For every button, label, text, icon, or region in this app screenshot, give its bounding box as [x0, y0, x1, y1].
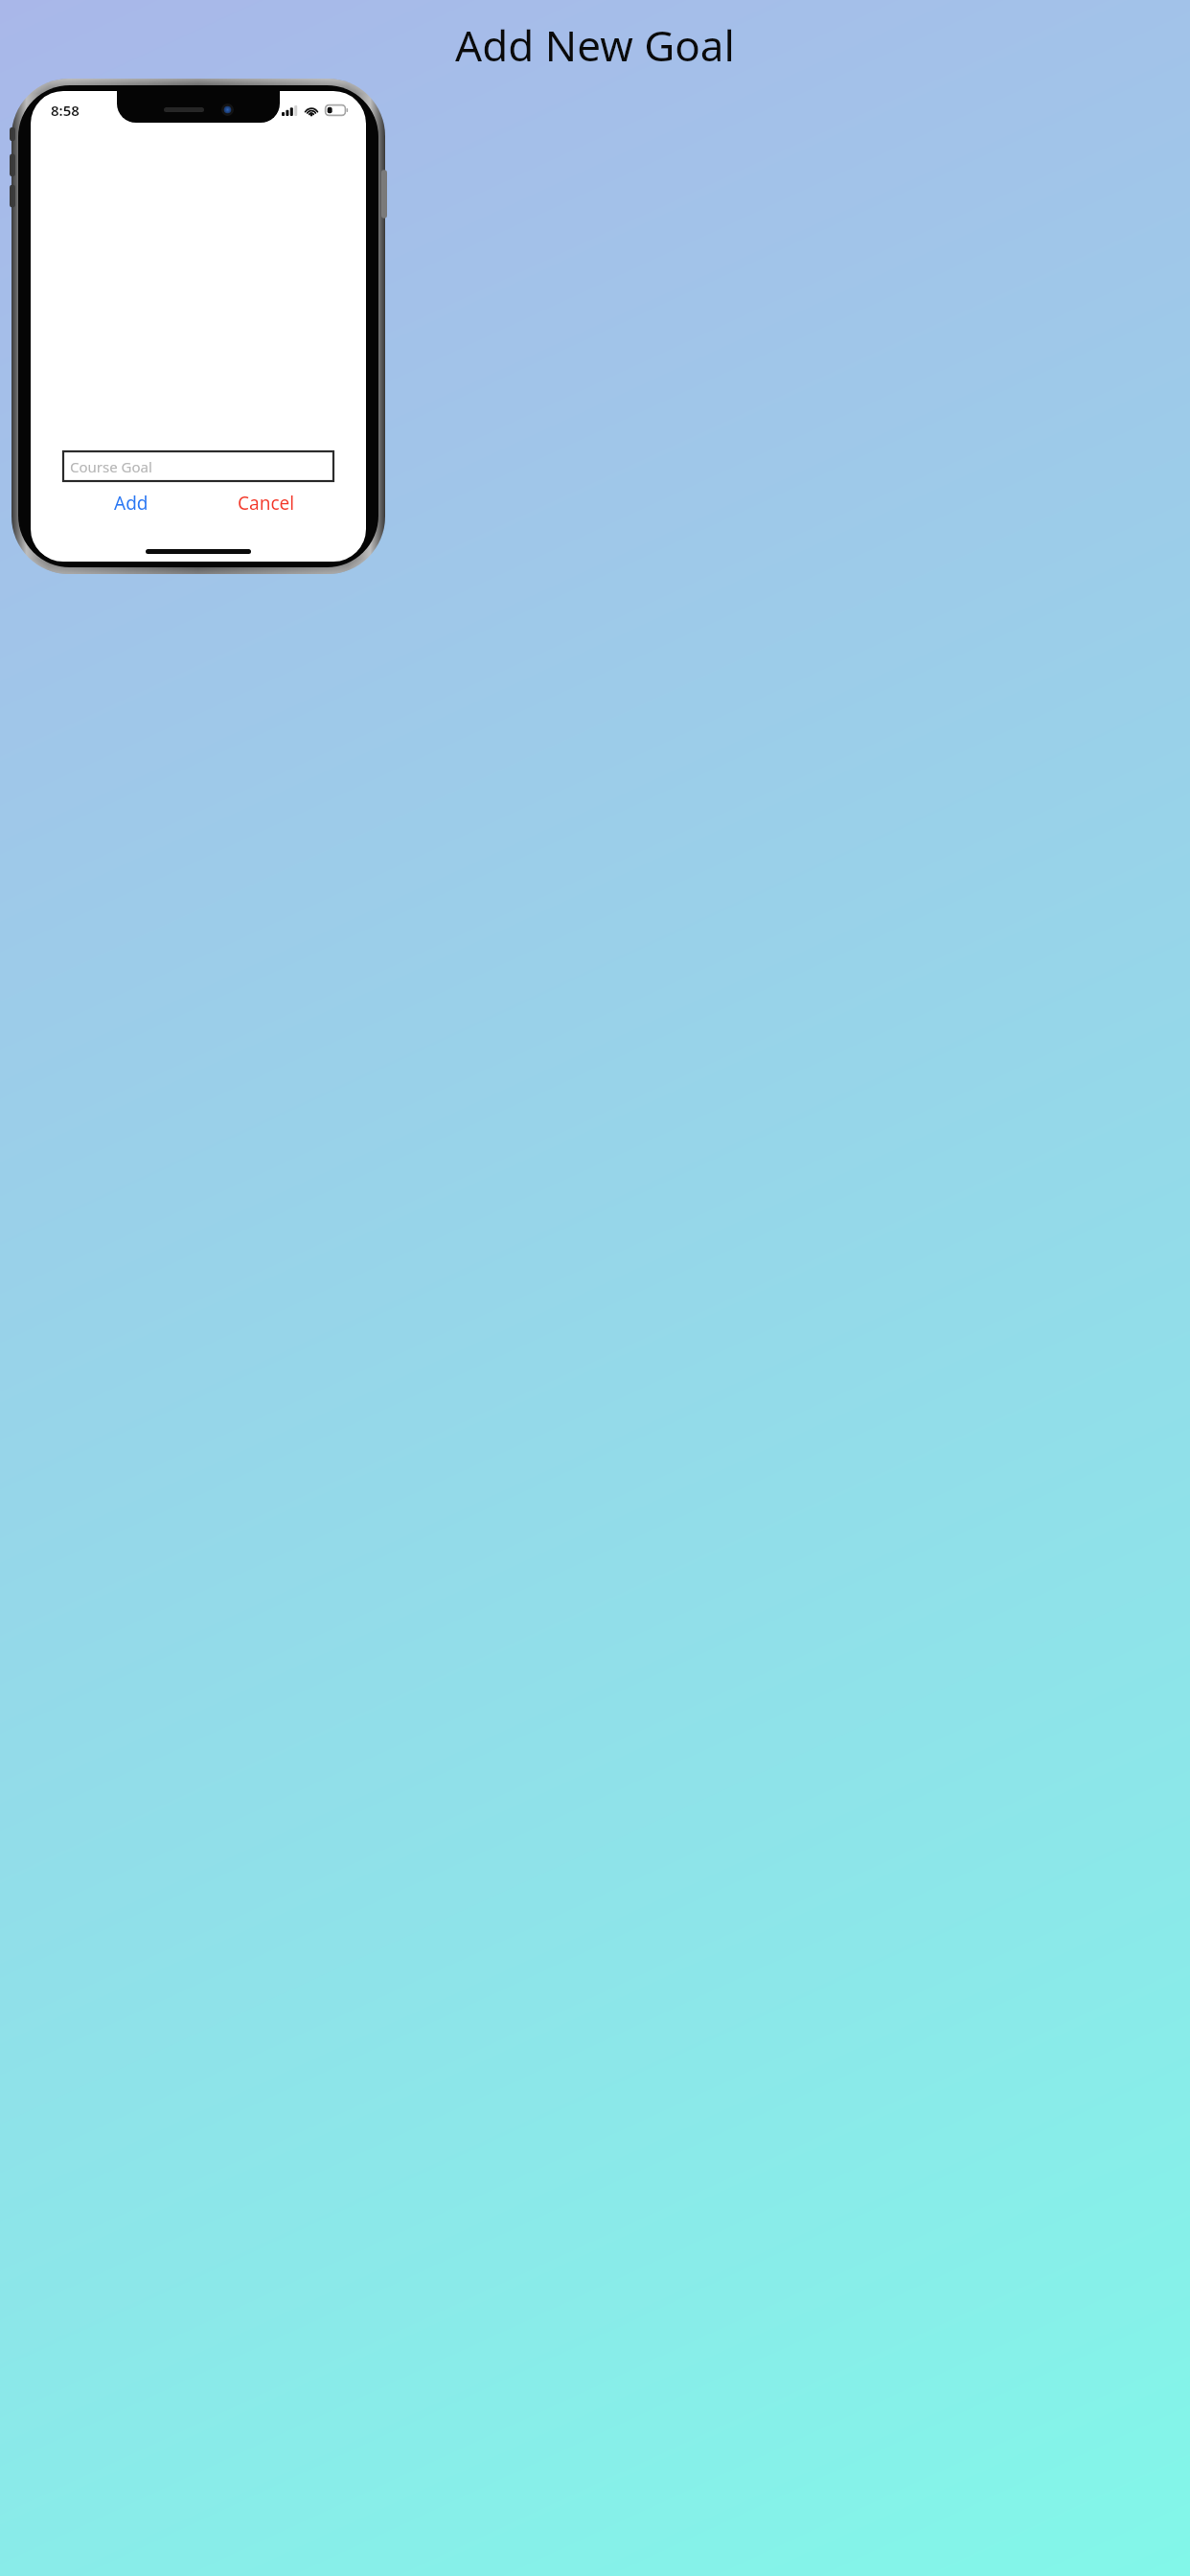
staticText: Add: [114, 491, 149, 516]
button[interactable]: Course Goal: [63, 451, 333, 481]
staticText: 8:58: [51, 101, 80, 120]
staticText: Course Goal: [70, 457, 152, 476]
staticText: Cancel: [238, 491, 295, 516]
button[interactable]: Cancel: [198, 489, 333, 517]
staticText: Add New Goal: [0, 16, 1190, 74]
button[interactable]: Add: [63, 489, 198, 517]
